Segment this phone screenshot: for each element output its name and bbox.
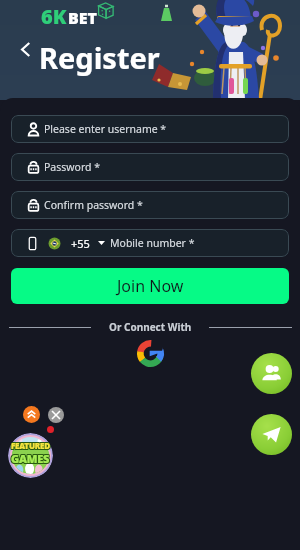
staticText: +55 [71, 236, 90, 251]
staticText: Or Connect With [109, 320, 192, 334]
staticText: GAMES [12, 450, 51, 465]
staticText: FEATURED [12, 441, 51, 452]
staticText: GAMES [12, 451, 51, 466]
button[interactable]: Telegram [251, 414, 292, 455]
staticText: FEATURED [10, 440, 49, 451]
button[interactable]: Join Now [11, 268, 289, 304]
staticText: Please enter username * [44, 122, 167, 136]
staticText: FEATURED [11, 439, 50, 450]
staticText: FEATURED [11, 441, 50, 452]
button[interactable]: Password * [11, 153, 289, 181]
staticText: 6K [41, 3, 67, 30]
staticText: GAMES [12, 452, 51, 467]
staticText: GAMES [11, 452, 50, 467]
staticText: GAMES [10, 451, 49, 466]
button[interactable]: Please enter username * [11, 115, 289, 143]
staticText: FEATURED [12, 439, 51, 450]
staticText: Password * [44, 160, 101, 174]
staticText: GAMES [10, 450, 49, 465]
staticText: Join Now [117, 275, 184, 297]
button[interactable]: Featured games [8, 433, 53, 478]
button[interactable]: Contact us [251, 353, 292, 394]
button[interactable]: Expand [23, 406, 40, 423]
staticText: GAMES [11, 451, 50, 466]
staticText: Confirm password * [44, 198, 143, 212]
button[interactable]: Sign in with Google [137, 340, 164, 367]
button[interactable]: Confirm password * [11, 191, 289, 219]
staticText: Register [39, 38, 160, 77]
staticText: FEATURED [10, 441, 49, 452]
button[interactable]: Close [48, 407, 64, 423]
staticText: BET [68, 7, 98, 29]
staticText: FEATURED [11, 440, 50, 451]
staticText: GAMES [10, 452, 49, 467]
button[interactable]: +55 [11, 229, 289, 257]
staticText: Mobile number * [110, 236, 195, 250]
button[interactable]: Back [13, 37, 37, 61]
staticText: FEATURED [10, 439, 49, 450]
staticText: FEATURED [12, 440, 51, 451]
staticText: GAMES [11, 450, 50, 465]
